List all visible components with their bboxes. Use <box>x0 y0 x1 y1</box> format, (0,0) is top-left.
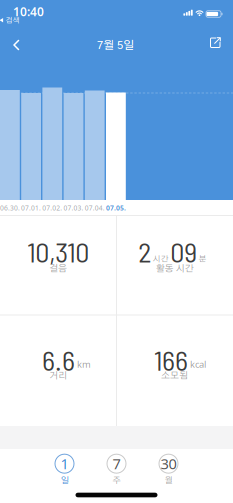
staticText: 07.02. <box>42 204 62 212</box>
staticText: 검색 <box>5 17 19 24</box>
button[interactable]: 1 <box>47 452 81 486</box>
staticText: 분 <box>199 255 207 263</box>
staticText: 07.04. <box>85 204 105 212</box>
staticText: 7월 5일 <box>97 40 134 51</box>
button[interactable]: 7 <box>99 452 133 486</box>
staticText: 1 <box>60 454 68 473</box>
staticText: kcal <box>190 358 206 370</box>
staticText: 06.30. <box>0 204 20 212</box>
staticText: 09 <box>170 235 197 268</box>
button[interactable]: Back <box>5 36 29 54</box>
button[interactable]: 30 <box>151 452 185 486</box>
staticText: 일 <box>60 476 68 485</box>
staticText: 07.03. <box>63 204 83 212</box>
staticText: 166 <box>154 343 188 376</box>
staticText: 월 <box>164 476 172 485</box>
staticText: 10:40 <box>13 3 44 19</box>
staticText: 10,310 <box>27 235 89 268</box>
staticText: 07.01. <box>21 204 41 212</box>
button[interactable]: Share <box>205 32 225 52</box>
staticText: 소모됨 <box>161 371 188 380</box>
staticText: km <box>77 358 91 370</box>
staticText: 시간 <box>153 255 169 263</box>
staticText: 07.05. <box>106 204 126 212</box>
staticText: 6.6 <box>42 343 75 376</box>
staticText: 30 <box>160 454 176 473</box>
staticText: 7 <box>112 454 120 473</box>
staticText: 주 <box>112 476 120 485</box>
staticText: 활동 시간 <box>156 264 194 273</box>
staticText: 거리 <box>49 371 67 380</box>
staticText: 걸음 <box>49 264 67 273</box>
staticText: 2 <box>138 235 151 268</box>
